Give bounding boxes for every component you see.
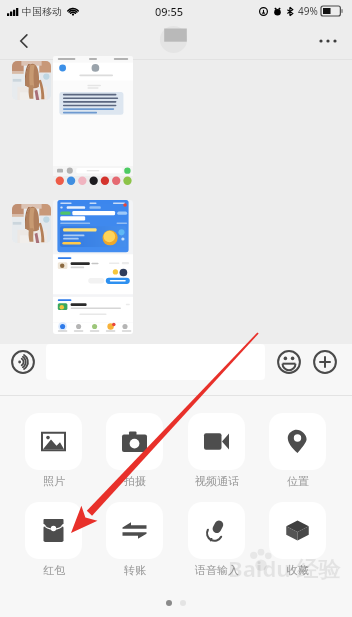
button[interactable]: Message input (46, 344, 265, 380)
staticText: 收藏 (287, 563, 309, 577)
button[interactable]: 视频通话 (187, 413, 246, 488)
staticText: 语音输入 (195, 563, 239, 577)
button[interactable]: Image message (53, 200, 133, 334)
button[interactable]: More options (313, 350, 337, 374)
button[interactable]: 照片 (24, 413, 83, 488)
button[interactable]: Voice input (11, 350, 35, 374)
staticText: 转账 (124, 563, 146, 577)
button[interactable]: Contact avatar (12, 61, 51, 100)
button[interactable]: 拍摄 (105, 413, 164, 488)
staticText: 拍摄 (124, 474, 146, 488)
button[interactable]: More (314, 27, 342, 55)
button[interactable]: 转账 (105, 502, 164, 577)
button[interactable]: 位置 (268, 413, 327, 488)
staticText: 09:55 (155, 4, 184, 19)
staticText: 红包 (43, 563, 65, 577)
button[interactable]: Image message (53, 56, 133, 186)
staticText: 照片 (43, 474, 65, 488)
button[interactable]: 收藏 (268, 502, 327, 577)
button[interactable]: 红包 (24, 502, 83, 577)
staticText: 中国移动 (22, 5, 62, 18)
staticText: Baidu 经验 (228, 553, 341, 583)
staticText: 位置 (287, 474, 309, 488)
button[interactable]: Contact avatar (12, 204, 51, 243)
staticText: 49% (298, 4, 318, 18)
staticText: 视频通话 (195, 474, 239, 488)
button[interactable]: Back (10, 27, 38, 55)
button[interactable]: 语音输入 (187, 502, 246, 577)
button[interactable]: Emoji (277, 350, 301, 374)
